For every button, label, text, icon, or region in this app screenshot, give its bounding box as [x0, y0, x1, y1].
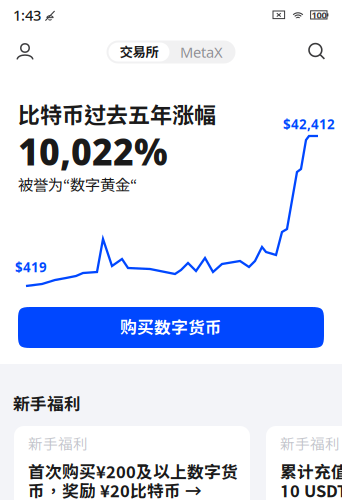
- button[interactable]: MetaX: [169, 42, 233, 61]
- staticText: 比特币过去五年涨幅: [18, 102, 216, 128]
- button[interactable]: Account: [8, 35, 42, 69]
- staticText: 交易所: [119, 44, 158, 60]
- button[interactable]: Search: [300, 35, 334, 69]
- staticText: 被誉为“数字黄金“: [18, 176, 137, 194]
- staticText: 新手福利: [28, 435, 88, 453]
- staticText: 10,022%: [18, 126, 168, 176]
- staticText: 累计充值: [280, 462, 342, 482]
- button[interactable]: 购买数字货币: [18, 307, 324, 348]
- staticText: 首次购买¥200及以上数字货: [28, 462, 238, 482]
- staticText: $419: [15, 258, 47, 276]
- button[interactable]: 交易所: [108, 42, 169, 61]
- staticText: 新手福利: [13, 394, 81, 414]
- staticText: MetaX: [180, 42, 223, 62]
- button[interactable]: 新手福利: [266, 426, 342, 500]
- staticText: 1:43: [13, 5, 41, 25]
- staticText: 10 USDT →: [280, 481, 342, 500]
- button[interactable]: 新手福利: [14, 426, 250, 500]
- staticText: 币，奖励 ¥20比特币 →: [28, 481, 202, 500]
- staticText: $42,412: [283, 115, 335, 133]
- staticText: 购买数字货币: [120, 318, 222, 337]
- staticText: 新手福利: [280, 435, 340, 453]
- staticText: 100: [312, 9, 327, 21]
